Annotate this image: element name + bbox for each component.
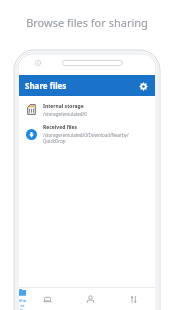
staticText: Internal storage [43,103,84,110]
staticText: /storage/emulated/0 [43,111,87,117]
staticText: /storage/emulated/0/Download/Nearby/ [43,132,129,138]
staticText: Browse files for sharing [26,15,148,30]
button[interactable]: Transfers [112,288,155,310]
button[interactable]: Settings [136,79,150,93]
staticText: QuickDrop [43,138,66,144]
button[interactable]: People [69,288,112,310]
button[interactable]: Internal storage [19,99,155,120]
staticText: Share files [25,80,67,91]
button[interactable]: Received files [19,122,155,146]
staticText: Received files [43,124,78,131]
button[interactable]: Share files [19,288,26,310]
button[interactable]: Devices [26,288,69,310]
staticText: Share files [19,298,26,310]
